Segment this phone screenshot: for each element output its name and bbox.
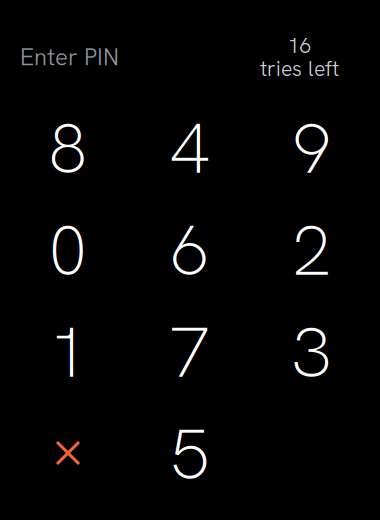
staticText: 9 bbox=[292, 102, 332, 194]
staticText: 5 bbox=[170, 408, 210, 500]
staticText: 6 bbox=[170, 204, 210, 296]
button[interactable]: 7 bbox=[129, 301, 251, 403]
staticText: 3 bbox=[292, 306, 332, 398]
staticText: Enter PIN bbox=[20, 41, 119, 73]
button[interactable]: 6 bbox=[129, 199, 251, 301]
staticText: 8 bbox=[48, 102, 88, 194]
staticText: 16 bbox=[287, 32, 311, 59]
button[interactable]: 0 bbox=[7, 199, 129, 301]
button[interactable]: 5 bbox=[129, 403, 251, 505]
button[interactable]: 8 bbox=[7, 97, 129, 199]
button[interactable]: 3 bbox=[251, 301, 373, 403]
staticText: 0 bbox=[48, 204, 88, 296]
staticText: 1 bbox=[48, 306, 88, 398]
staticText: tries left bbox=[260, 55, 339, 82]
staticText: 2 bbox=[292, 204, 332, 296]
button[interactable]: 1 bbox=[7, 301, 129, 403]
button[interactable]: Delete bbox=[7, 403, 129, 505]
button[interactable]: 2 bbox=[251, 199, 373, 301]
staticText: 7 bbox=[170, 306, 210, 398]
button[interactable]: 4 bbox=[129, 97, 251, 199]
button[interactable]: 9 bbox=[251, 97, 373, 199]
staticText: 4 bbox=[170, 102, 210, 194]
